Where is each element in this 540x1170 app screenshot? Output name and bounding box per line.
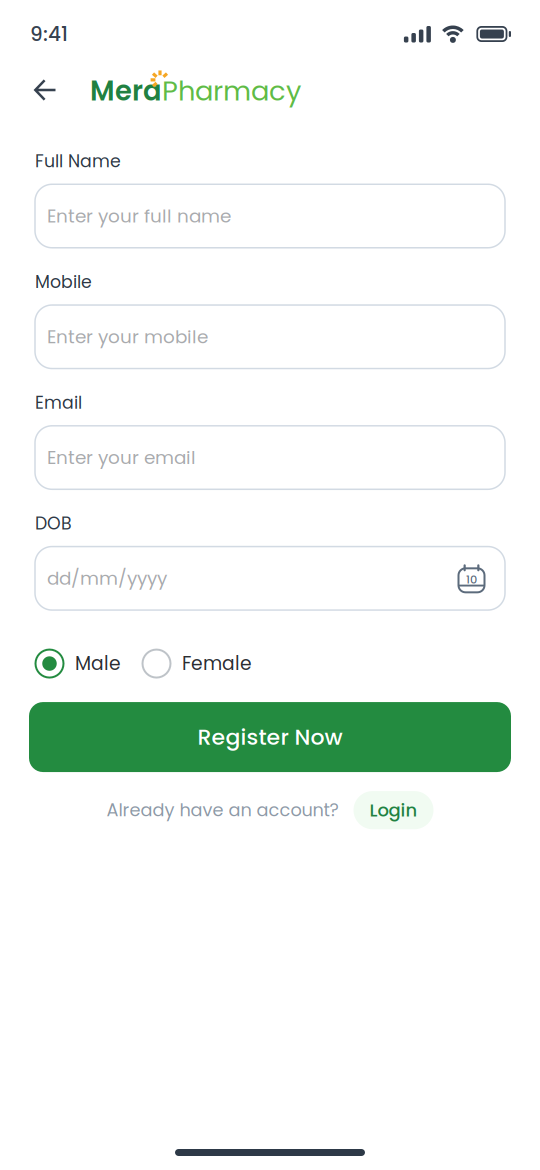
button[interactable]: Login xyxy=(353,791,433,829)
staticText: Male xyxy=(75,650,121,677)
staticText: DOB xyxy=(35,511,72,536)
staticText: Already have an account? xyxy=(106,798,338,822)
staticText: Enter your email xyxy=(47,445,196,470)
button[interactable]: Register Now xyxy=(29,702,511,772)
staticText: Email xyxy=(35,390,82,415)
staticText: Enter your mobile xyxy=(47,324,208,350)
staticText: 9:41 xyxy=(30,20,68,48)
staticText: Register Now xyxy=(197,722,342,752)
button[interactable]: Enter your email xyxy=(35,426,505,489)
staticText: dd/mm/yyyy xyxy=(47,565,167,591)
button[interactable]: Female xyxy=(142,649,252,678)
staticText: Enter your full name xyxy=(47,203,231,229)
button[interactable]: Male xyxy=(35,649,121,678)
staticText: Login xyxy=(369,798,417,823)
staticText: Full Name xyxy=(35,149,121,173)
staticText: Female xyxy=(182,650,252,677)
staticText: 10 xyxy=(466,572,477,588)
button[interactable]: dd/mm/yyyy xyxy=(35,547,505,610)
staticText: Mobile xyxy=(35,270,92,294)
button[interactable]: Enter your full name xyxy=(35,184,505,248)
staticText: Mera xyxy=(90,72,162,110)
button[interactable]: Back xyxy=(0,63,90,113)
button[interactable]: Enter your mobile xyxy=(35,305,505,368)
staticText: Pharmacy xyxy=(162,72,301,110)
